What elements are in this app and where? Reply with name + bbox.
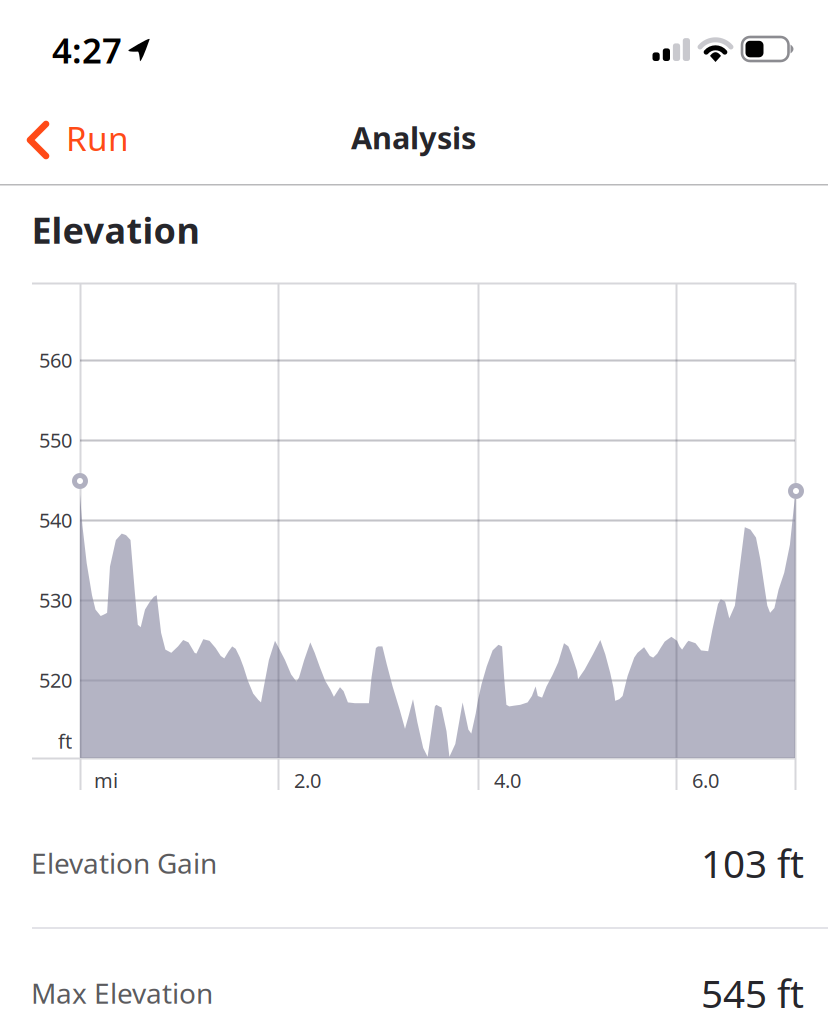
staticText: 103 ft <box>701 837 804 889</box>
staticText: 545 ft <box>701 967 804 1019</box>
staticText: 4:27 <box>52 27 122 73</box>
staticText: 520 <box>39 667 72 693</box>
staticText: Run <box>66 116 129 160</box>
staticText: Elevation <box>31 206 199 254</box>
button[interactable]: Elevation Gain <box>0 799 828 927</box>
staticText: 560 <box>39 347 72 373</box>
staticText: Elevation Gain <box>31 844 217 882</box>
staticText: 550 <box>39 427 72 453</box>
button[interactable]: Max Elevation <box>0 929 828 1029</box>
staticText: 530 <box>39 587 72 613</box>
staticText: 4.0 <box>494 767 521 794</box>
staticText: mi <box>94 767 118 794</box>
staticText: 6.0 <box>692 767 719 794</box>
staticText: Analysis <box>351 117 476 158</box>
staticText: Max Elevation <box>31 974 213 1012</box>
button[interactable]: Back to Run <box>0 0 128 72</box>
staticText: ft <box>58 728 72 754</box>
staticText: 2.0 <box>294 767 321 794</box>
staticText: 540 <box>39 507 72 533</box>
